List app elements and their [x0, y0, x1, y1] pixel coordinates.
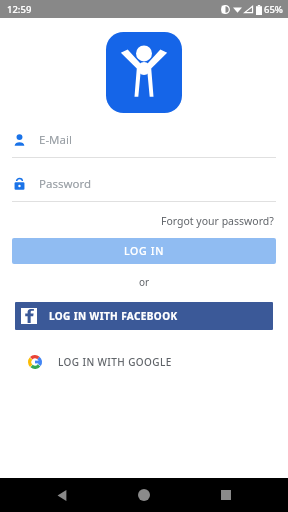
- staticText: Password: [39, 176, 92, 192]
- staticText: 12:59: [7, 3, 32, 16]
- button[interactable]: LOG IN: [12, 238, 276, 264]
- button[interactable]: Recents: [206, 478, 246, 512]
- staticText: LOG IN: [124, 244, 165, 258]
- staticText: LOG IN WITH GOOGLE: [58, 355, 172, 369]
- staticText: E-Mail: [39, 132, 72, 148]
- staticText: or: [139, 275, 150, 289]
- button[interactable]: Forgot your password?: [159, 212, 276, 230]
- button[interactable]: Home: [124, 478, 164, 512]
- button[interactable]: Email: [0, 132, 288, 158]
- button[interactable]: Back: [42, 478, 82, 512]
- button[interactable]: LOG IN WITH GOOGLE: [16, 348, 272, 375]
- staticText: LOG IN WITH FACEBOOK: [49, 309, 178, 323]
- button[interactable]: LOG IN WITH FACEBOOK: [15, 302, 273, 330]
- other: Email: [14, 134, 25, 146]
- staticText: Forgot your password?: [161, 214, 274, 228]
- other: Password: [14, 178, 25, 190]
- button[interactable]: Password: [0, 176, 288, 202]
- staticText: 65%: [264, 3, 283, 16]
